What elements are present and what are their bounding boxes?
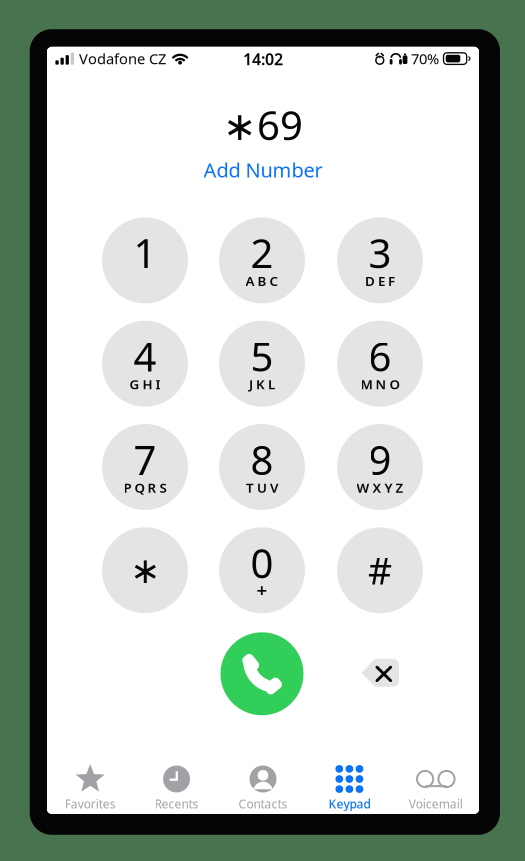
- button[interactable]: Call: [219, 631, 305, 717]
- staticText: 6: [368, 329, 391, 383]
- button[interactable]: 1: [102, 217, 188, 303]
- staticText: Favorites: [65, 796, 116, 812]
- staticText: 3: [368, 226, 391, 279]
- staticText: G H I: [129, 375, 160, 393]
- button[interactable]: Favorites: [47, 760, 133, 814]
- staticText: Contacts: [238, 796, 287, 812]
- button[interactable]: 3: [337, 217, 423, 303]
- staticText: 14:02: [243, 48, 283, 70]
- button[interactable]: Recents: [133, 760, 220, 814]
- staticText: 70%: [411, 49, 439, 68]
- staticText: +: [256, 577, 267, 602]
- button[interactable]: 6: [337, 321, 423, 407]
- button[interactable]: 8: [219, 424, 305, 510]
- button[interactable]: Add Number: [188, 156, 338, 184]
- staticText: J K L: [249, 375, 275, 393]
- staticText: 7: [133, 433, 156, 486]
- staticText: 8: [250, 433, 273, 486]
- staticText: ∗69: [223, 98, 303, 151]
- staticText: D E F: [365, 272, 395, 290]
- button[interactable]: 2: [219, 217, 305, 303]
- button[interactable]: 5: [219, 321, 305, 407]
- staticText: T U V: [246, 479, 278, 496]
- button[interactable]: Voicemail: [393, 760, 479, 814]
- button[interactable]: 7: [102, 424, 188, 510]
- button[interactable]: 0: [219, 527, 305, 613]
- staticText: 4: [133, 329, 156, 383]
- staticText: Vodafone CZ: [79, 49, 166, 68]
- staticText: 2: [250, 226, 273, 279]
- staticText: Keypad: [328, 796, 370, 812]
- staticText: 1: [133, 226, 156, 279]
- button[interactable]: 9: [337, 424, 423, 510]
- staticText: Voicemail: [409, 796, 463, 812]
- button[interactable]: Contacts: [220, 760, 306, 814]
- staticText: 9: [368, 433, 391, 486]
- staticText: P Q R S: [123, 479, 166, 496]
- staticText: A B C: [245, 272, 278, 290]
- staticText: 5: [250, 329, 273, 383]
- staticText: ∗: [130, 550, 160, 591]
- staticText: Recents: [155, 796, 199, 812]
- button[interactable]: Keypad: [306, 760, 393, 814]
- staticText: W X Y Z: [356, 479, 403, 496]
- staticText: #: [368, 545, 392, 595]
- button[interactable]: #: [337, 527, 423, 613]
- button[interactable]: 4: [102, 321, 188, 407]
- staticText: M N O: [360, 375, 399, 393]
- button[interactable]: Delete: [341, 638, 419, 708]
- staticText: 0: [250, 536, 273, 589]
- staticText: Add Number: [203, 156, 322, 183]
- button[interactable]: ∗: [102, 527, 188, 613]
